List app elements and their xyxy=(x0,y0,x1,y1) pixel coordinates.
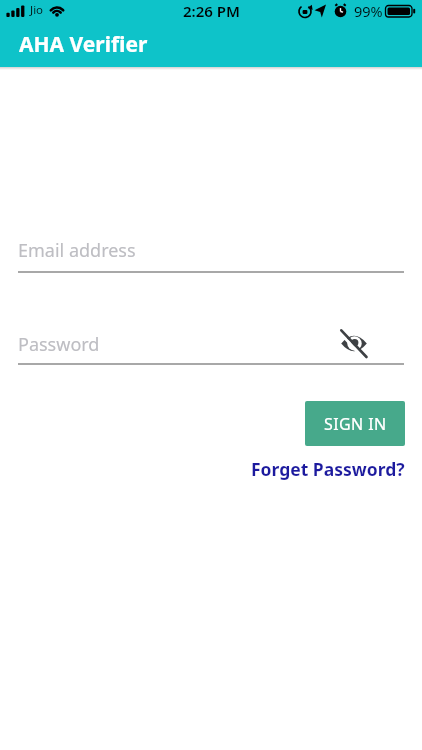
staticText: Forget Password? xyxy=(251,457,405,481)
staticText: SIGN IN xyxy=(324,413,387,435)
staticText: 2:26 PM xyxy=(183,1,240,21)
button[interactable]: SIGN IN xyxy=(305,401,405,446)
staticText: Jio xyxy=(30,2,44,18)
staticText: Password xyxy=(18,332,100,357)
staticText: Email address xyxy=(18,238,136,263)
staticText: 99% xyxy=(354,1,383,21)
staticText: AHA Verifier xyxy=(19,30,148,59)
button[interactable]: Forget Password? xyxy=(251,457,405,481)
button[interactable]: Password xyxy=(18,327,404,365)
button[interactable]: Email address xyxy=(18,233,404,273)
button[interactable] xyxy=(337,326,371,360)
